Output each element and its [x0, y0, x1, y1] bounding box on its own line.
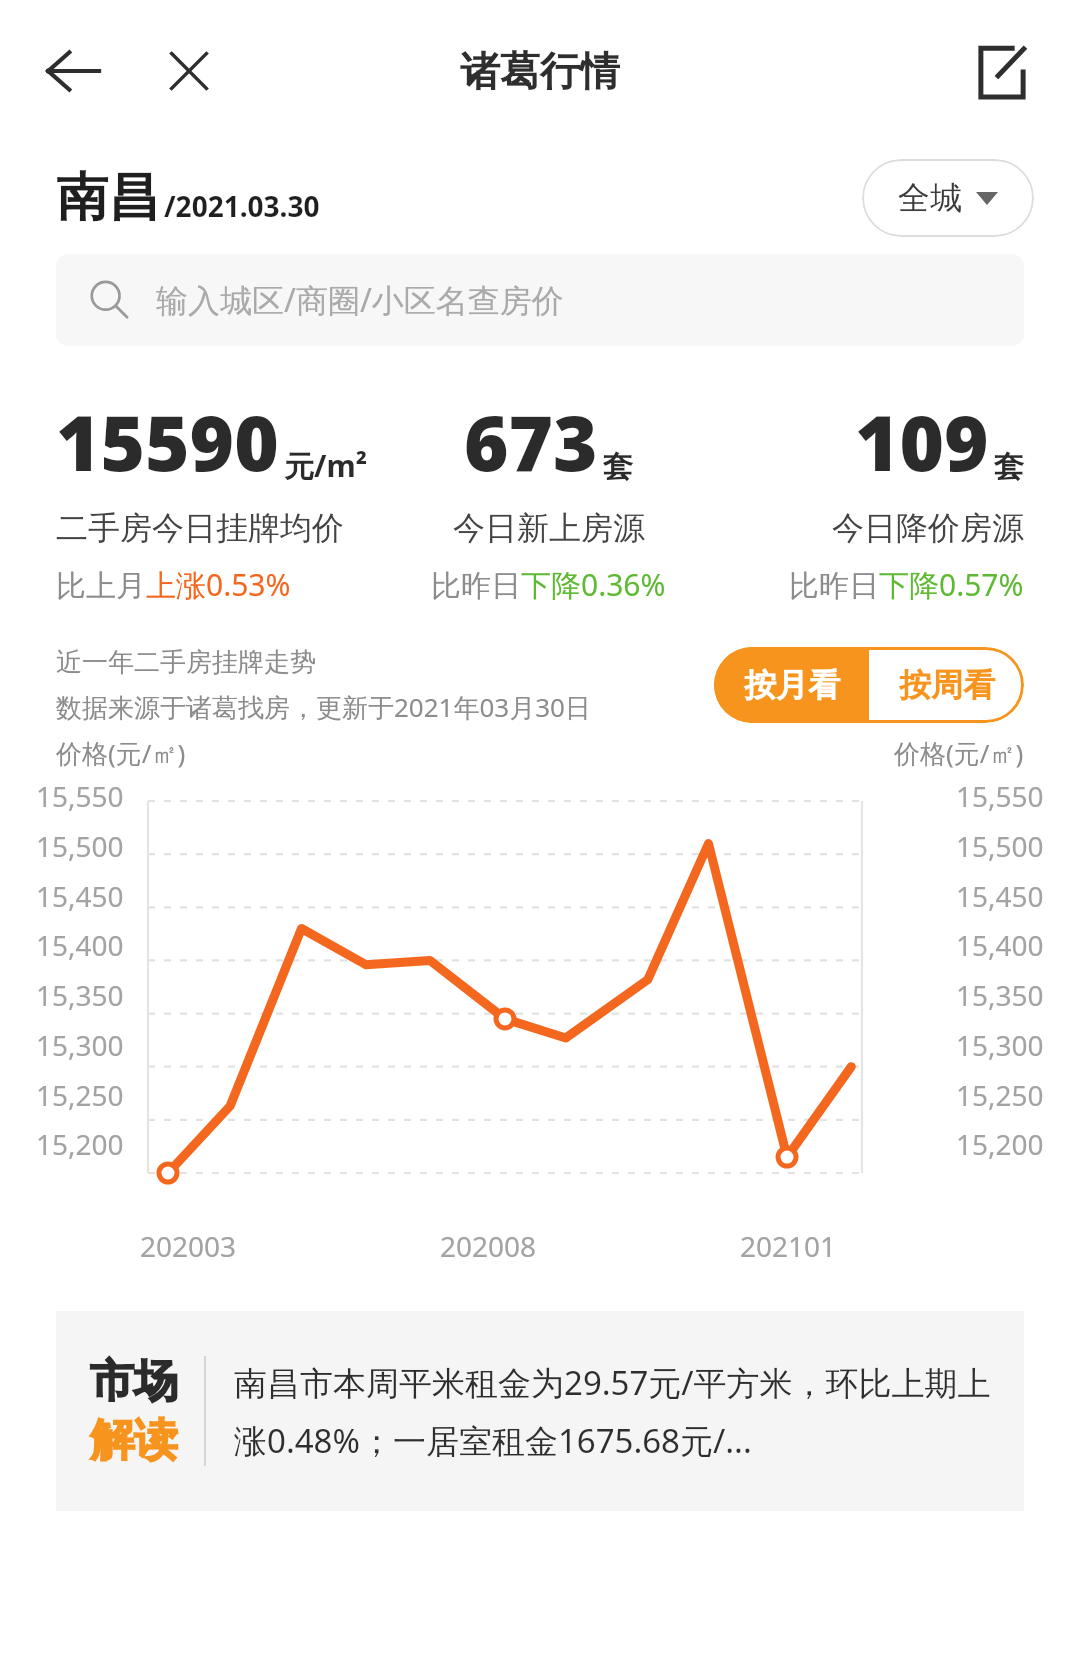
- staticText: 价格(元/㎡): [894, 735, 1024, 771]
- staticText: 15,350: [956, 976, 1044, 1014]
- button[interactable]: 全城: [862, 159, 1034, 237]
- staticText: 比昨日下降0.57%: [789, 564, 1024, 605]
- staticText: 解读: [90, 1413, 178, 1468]
- staticText: 15,350: [36, 976, 124, 1014]
- button[interactable]: Back: [42, 40, 104, 102]
- button[interactable]: 按周看: [869, 647, 1024, 723]
- staticText: 15,450: [956, 877, 1044, 915]
- staticText: 南昌: [56, 165, 160, 231]
- staticText: 15590: [56, 390, 279, 494]
- button[interactable]: 按月看: [714, 647, 869, 723]
- staticText: 15,400: [36, 926, 124, 964]
- staticText: 15,300: [36, 1026, 124, 1064]
- staticText: 15,300: [956, 1026, 1044, 1064]
- staticText: 15,500: [956, 827, 1044, 865]
- staticText: 数据来源于诸葛找房，更新于2021年03月30日: [56, 689, 591, 725]
- staticText: /2021.03.30: [164, 187, 320, 225]
- staticText: 按周看: [899, 665, 995, 705]
- staticText: 按月看: [744, 665, 840, 705]
- staticText: 比昨日下降0.36%: [431, 564, 666, 605]
- staticText: 市场: [90, 1354, 178, 1409]
- staticText: 673: [464, 390, 598, 494]
- staticText: 15,450: [36, 877, 124, 915]
- button[interactable]: 输入城区/商圈/小区名查房价: [56, 254, 1024, 346]
- staticText: 202101: [740, 1227, 837, 1265]
- staticText: 15,400: [956, 926, 1044, 964]
- staticText: 202008: [440, 1227, 537, 1265]
- staticText: 近一年二手房挂牌走势: [56, 646, 316, 679]
- staticText: 15,200: [36, 1125, 124, 1163]
- staticText: 全城: [898, 178, 962, 218]
- staticText: 15,250: [956, 1076, 1044, 1114]
- staticText: 202003: [140, 1227, 237, 1265]
- staticText: 15,550: [956, 777, 1044, 815]
- button[interactable]: Share: [970, 40, 1034, 104]
- staticText: 南昌市本周平米租金为29.57元/平方米，环比上期上涨0.48%；一居室租金16…: [234, 1360, 1004, 1463]
- staticText: 15,250: [36, 1076, 124, 1114]
- staticText: 15,550: [36, 777, 124, 815]
- staticText: 元/m²: [284, 445, 368, 486]
- staticText: 比上月上涨0.53%: [56, 564, 291, 605]
- button[interactable]: 市场: [56, 1311, 1024, 1511]
- staticText: 价格(元/㎡): [56, 735, 186, 771]
- staticText: 15,200: [956, 1125, 1044, 1163]
- staticText: 二手房今日挂牌均价: [56, 508, 344, 548]
- staticText: 诸葛行情: [460, 46, 620, 96]
- button[interactable]: Close: [160, 42, 218, 100]
- staticText: 15,500: [36, 827, 124, 865]
- staticText: 套: [994, 448, 1024, 486]
- staticText: 输入城区/商圈/小区名查房价: [156, 278, 564, 322]
- staticText: 今日新上房源: [453, 508, 645, 548]
- staticText: 套: [603, 448, 633, 486]
- staticText: 今日降价房源: [832, 508, 1024, 548]
- staticText: 109: [855, 390, 989, 494]
